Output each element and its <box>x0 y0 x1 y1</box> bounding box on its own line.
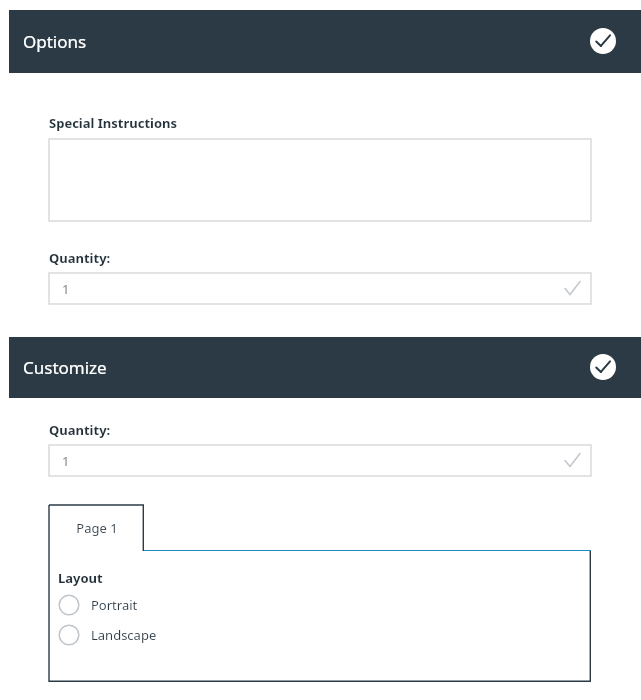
staticText: Layout <box>58 569 103 587</box>
staticText: Portrait <box>91 596 138 614</box>
button[interactable]: 1 <box>49 273 591 304</box>
button[interactable]: Portrait <box>58 592 238 618</box>
staticText: Customize <box>23 356 107 379</box>
staticText: Page 1 <box>76 519 118 537</box>
staticText: Quantity: <box>49 249 111 267</box>
button[interactable]: Confirm Options <box>589 27 617 55</box>
staticText: Landscape <box>91 626 157 644</box>
staticText: Quantity: <box>49 421 111 439</box>
button[interactable]: Page 1 <box>49 505 144 551</box>
staticText: 1 <box>62 280 70 298</box>
staticText: Special Instructions <box>49 114 178 132</box>
staticText: 1 <box>62 452 70 470</box>
button[interactable]: 1 <box>49 445 591 476</box>
button[interactable]: Landscape <box>58 622 238 648</box>
button[interactable]: Confirm Customize <box>589 353 617 381</box>
button[interactable] <box>49 139 591 221</box>
button[interactable]: Options <box>9 10 641 73</box>
staticText: Options <box>23 30 87 53</box>
button[interactable]: Customize <box>9 337 641 398</box>
